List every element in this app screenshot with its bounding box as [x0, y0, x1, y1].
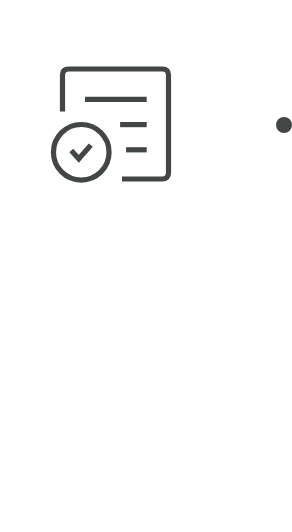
button[interactable]: Unread indicator — [276, 117, 292, 133]
button[interactable]: Completed task list — [50, 63, 182, 183]
